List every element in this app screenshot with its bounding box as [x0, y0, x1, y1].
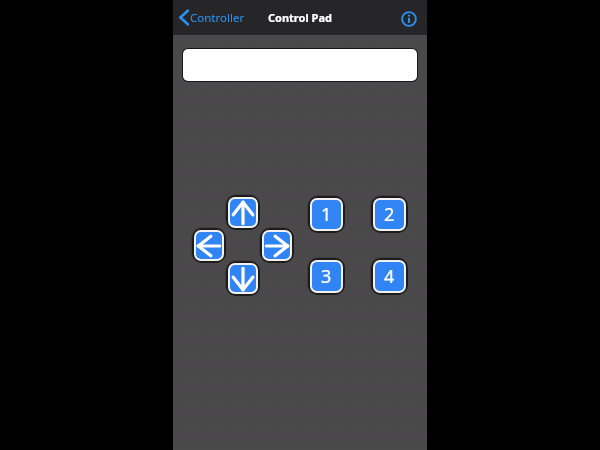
button[interactable]: Button 3	[307, 257, 345, 295]
staticText: 3	[321, 264, 332, 289]
staticText: 4	[384, 264, 395, 289]
staticText: Controller	[190, 10, 245, 26]
staticText: Control Pad	[268, 10, 332, 25]
button[interactable]: Left	[191, 227, 226, 263]
button[interactable]: Button 4	[370, 257, 408, 295]
button[interactable]: Button 2	[370, 195, 408, 233]
button[interactable]: Down	[225, 260, 260, 296]
button[interactable]: Info	[398, 8, 420, 30]
staticText: 1	[321, 202, 332, 227]
button[interactable]: Up	[225, 194, 260, 230]
button[interactable]: Controller	[177, 5, 247, 30]
staticText: 2	[384, 202, 395, 227]
button[interactable]: Button 1	[307, 195, 345, 233]
button[interactable]: Right	[259, 227, 294, 263]
button[interactable]	[183, 49, 417, 81]
